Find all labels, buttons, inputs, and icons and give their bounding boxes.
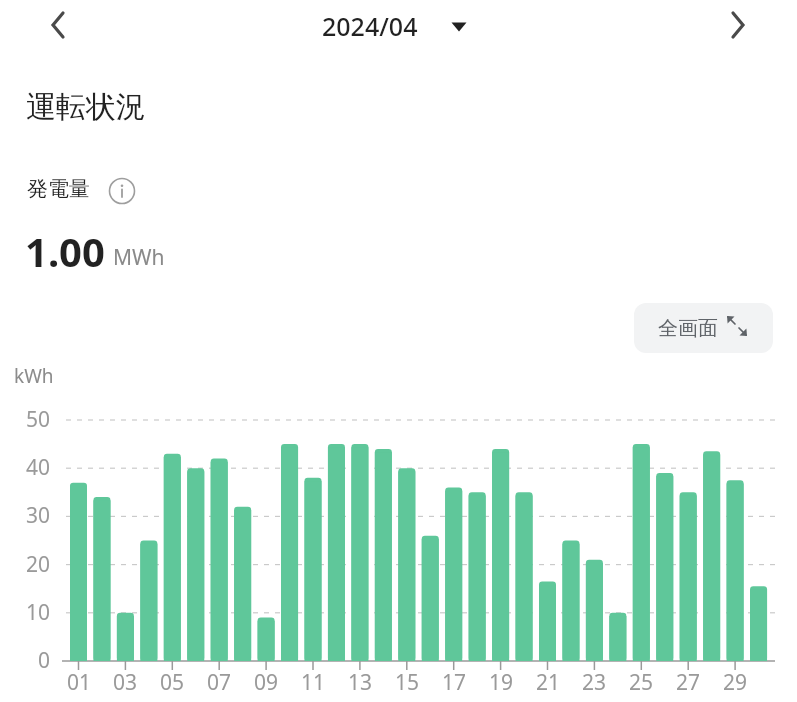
staticText: 09 [248, 668, 284, 698]
staticText: 29 [717, 668, 753, 698]
staticText: 2024/04 [322, 9, 418, 43]
staticText: 03 [107, 668, 143, 698]
staticText: kWh [14, 363, 54, 389]
staticText: 40 [14, 453, 50, 483]
staticText: 15 [389, 668, 425, 698]
staticText: 30 [14, 501, 50, 531]
staticText: 発電量 [27, 176, 90, 202]
button[interactable]: Next month [710, 0, 766, 52]
button[interactable]: 全画面 [634, 303, 773, 353]
staticText: 23 [576, 668, 612, 698]
staticText: 19 [483, 668, 519, 698]
staticText: 07 [201, 668, 237, 698]
staticText: 05 [154, 668, 190, 698]
staticText: 21 [530, 668, 566, 698]
button[interactable]: Previous month [30, 0, 86, 52]
staticText: 運転状況 [26, 88, 146, 126]
staticText: 1.00 [25, 224, 105, 278]
staticText: 10 [14, 598, 50, 628]
staticText: 25 [623, 668, 659, 698]
staticText: 11 [295, 668, 331, 698]
staticText: 27 [670, 668, 706, 698]
staticText: 17 [436, 668, 472, 698]
staticText: 20 [14, 550, 50, 580]
staticText: MWh [113, 243, 165, 272]
staticText: 0 [14, 646, 50, 676]
staticText: 13 [342, 668, 378, 698]
staticText: 01 [61, 668, 97, 698]
staticText: 全画面 [658, 316, 718, 341]
staticText: 50 [14, 405, 50, 435]
button[interactable]: Information about power generation [106, 175, 138, 207]
button[interactable]: 2024/04 [300, 2, 500, 50]
